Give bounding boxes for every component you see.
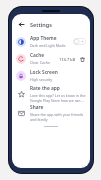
button[interactable]: Clear cache — [78, 55, 86, 63]
staticText: Cache — [30, 52, 45, 59]
button[interactable]: Back — [16, 19, 26, 29]
button[interactable]: Lock Screen — [12, 67, 90, 84]
button[interactable]: Rate the app — [12, 84, 90, 103]
staticText: Dark and Light Mode — [30, 43, 66, 48]
staticText: Share — [30, 104, 44, 111]
button[interactable]: Cache — [12, 50, 90, 67]
button[interactable]: App Theme — [12, 33, 90, 50]
staticText: 114.7 kB — [59, 57, 76, 62]
staticText: Rate the app — [30, 85, 60, 92]
staticText: Clear Cache — [30, 60, 50, 65]
staticText: High security — [30, 77, 53, 82]
staticText: Lock Screen — [30, 69, 58, 76]
staticText: Settings — [30, 21, 52, 28]
staticText: App Theme — [30, 35, 57, 42]
button[interactable]: Share — [12, 103, 90, 122]
staticText: Love this app? Let us know in the Google… — [30, 93, 86, 103]
button[interactable]: Toggle dark mode — [73, 38, 86, 45]
staticText: Share the app with your friends and fami… — [30, 112, 86, 122]
